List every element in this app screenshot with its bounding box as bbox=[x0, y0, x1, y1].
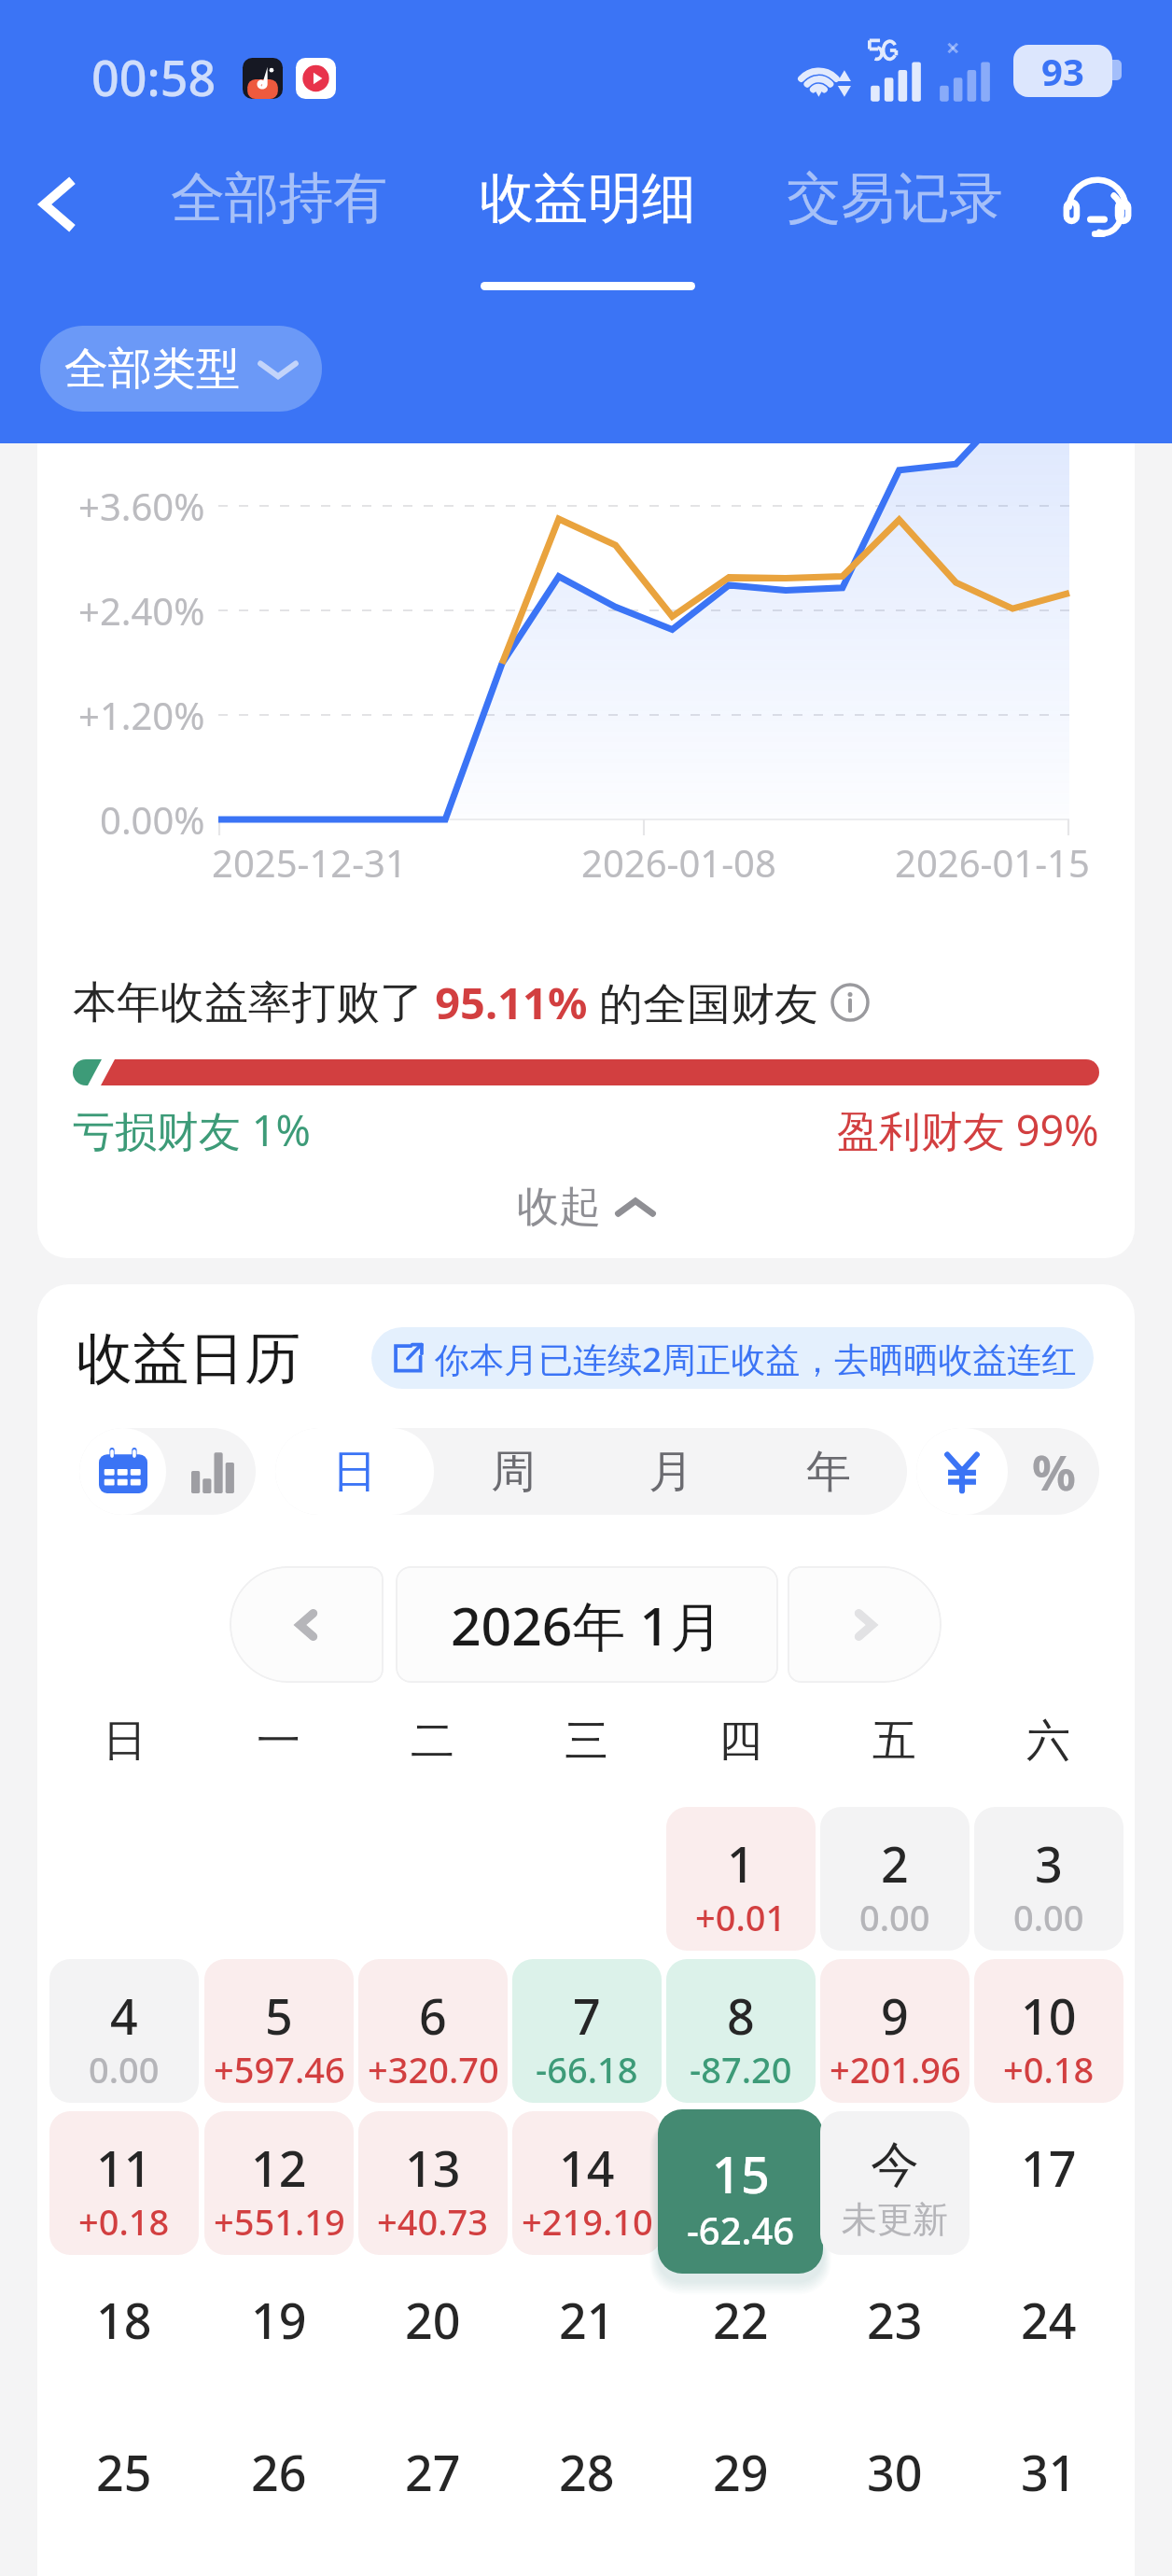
staticText: 周 bbox=[491, 1444, 536, 1500]
staticText: 全部持有 bbox=[171, 164, 387, 232]
button[interactable]: 24 bbox=[974, 2263, 1123, 2407]
staticText: 11 bbox=[96, 2135, 152, 2201]
staticText: 0.00 bbox=[89, 2045, 160, 2093]
button[interactable]: 4 bbox=[49, 1959, 199, 2103]
button[interactable]: 21 bbox=[512, 2263, 662, 2407]
staticText: +320.70 bbox=[368, 2045, 499, 2093]
button[interactable]: 6 bbox=[358, 1959, 508, 2103]
staticText: 0.00% bbox=[100, 794, 205, 845]
staticText: 25 bbox=[96, 2439, 152, 2505]
button[interactable]: 3 bbox=[974, 1807, 1123, 1951]
staticText: 93 bbox=[1041, 46, 1084, 96]
staticText: 15 bbox=[712, 2139, 770, 2208]
staticText: 二 bbox=[411, 1714, 454, 1766]
button[interactable]: Bar chart view bbox=[169, 1428, 256, 1515]
button[interactable]: Calendar view bbox=[79, 1428, 166, 1515]
staticText: 13 bbox=[405, 2135, 461, 2201]
button[interactable]: 27 bbox=[358, 2415, 508, 2559]
staticText: +40.73 bbox=[377, 2197, 489, 2246]
staticText: 23 bbox=[867, 2287, 923, 2353]
staticText: 27 bbox=[405, 2439, 461, 2505]
staticText: 2026年 1月 bbox=[451, 1589, 723, 1661]
staticText: 95.11% bbox=[424, 973, 599, 1032]
button[interactable]: 11 bbox=[49, 2111, 199, 2255]
button[interactable]: 13 bbox=[358, 2111, 508, 2255]
staticText: 8 bbox=[727, 1982, 755, 2049]
staticText: 本年收益率打败了 bbox=[73, 975, 424, 1030]
staticText: +0.18 bbox=[78, 2197, 170, 2246]
staticText: 14 bbox=[559, 2135, 615, 2201]
button[interactable]: 29 bbox=[666, 2415, 816, 2559]
button[interactable]: 收起 bbox=[37, 1179, 1135, 1235]
staticText: +0.18 bbox=[1003, 2045, 1095, 2093]
button[interactable]: 28 bbox=[512, 2415, 662, 2559]
button[interactable]: Customer service bbox=[1054, 166, 1140, 252]
staticText: 交易记录 bbox=[787, 164, 1003, 232]
staticText: 3 bbox=[1035, 1830, 1063, 1897]
staticText: 收益日历 bbox=[77, 1323, 300, 1394]
button[interactable]: 月 bbox=[592, 1428, 749, 1515]
staticText: 盈利财友 99% bbox=[837, 1101, 1099, 1158]
button[interactable]: 你本月已连续2周正收益，去晒晒收益连红 bbox=[371, 1327, 1094, 1389]
staticText: +0.01 bbox=[695, 1893, 787, 1941]
button[interactable]: 2026年 1月 bbox=[396, 1566, 778, 1683]
button[interactable]: Previous month bbox=[230, 1566, 384, 1683]
staticText: 6 bbox=[419, 1982, 447, 2049]
staticText: 28 bbox=[559, 2439, 615, 2505]
staticText: 10 bbox=[1021, 1982, 1077, 2049]
button[interactable]: 20 bbox=[358, 2263, 508, 2407]
button[interactable]: 19 bbox=[204, 2263, 354, 2407]
button[interactable]: 日 bbox=[275, 1428, 434, 1515]
button[interactable]: 10 bbox=[974, 1959, 1123, 2103]
staticText: 18 bbox=[96, 2287, 152, 2353]
button[interactable]: 9 bbox=[820, 1959, 970, 2103]
staticText: 五 bbox=[872, 1714, 916, 1766]
button[interactable]: 全部持有 bbox=[158, 164, 400, 291]
staticText: 收益明细 bbox=[480, 164, 696, 232]
staticText: 19 bbox=[251, 2287, 307, 2353]
button[interactable]: 1 bbox=[666, 1807, 816, 1951]
button[interactable]: 15 bbox=[658, 2109, 823, 2274]
button[interactable]: Back bbox=[16, 162, 100, 246]
button[interactable]: 12 bbox=[204, 2111, 354, 2255]
button[interactable]: 8 bbox=[666, 1959, 816, 2103]
staticText: 日 bbox=[332, 1444, 377, 1500]
button[interactable]: 17 bbox=[974, 2111, 1123, 2255]
button[interactable]: 23 bbox=[820, 2263, 970, 2407]
button[interactable]: 周 bbox=[434, 1428, 592, 1515]
staticText: -87.20 bbox=[690, 2045, 792, 2093]
staticText: -66.18 bbox=[536, 2045, 638, 2093]
staticText: 20 bbox=[405, 2287, 461, 2353]
staticText: 0.00 bbox=[1013, 1893, 1084, 1941]
staticText: 你本月已连续2周正收益，去晒晒收益连红 bbox=[435, 1335, 1077, 1382]
button[interactable]: 18 bbox=[49, 2263, 199, 2407]
staticText: +551.19 bbox=[214, 2197, 345, 2246]
staticText: 2026-01-08 bbox=[581, 837, 776, 888]
staticText: +201.96 bbox=[830, 2045, 961, 2093]
button[interactable]: 5 bbox=[204, 1959, 354, 2103]
staticText: 全部类型 bbox=[64, 342, 240, 397]
button[interactable]: Show percent bbox=[1008, 1428, 1099, 1515]
staticText: 亏损财友 1% bbox=[73, 1101, 311, 1158]
staticText: 12 bbox=[251, 2135, 307, 2201]
staticText: +597.46 bbox=[214, 2045, 345, 2093]
button[interactable]: 25 bbox=[49, 2415, 199, 2559]
button[interactable]: 7 bbox=[512, 1959, 662, 2103]
button[interactable]: 年 bbox=[749, 1428, 907, 1515]
button[interactable]: Show amount bbox=[916, 1428, 1008, 1515]
button[interactable]: 今 bbox=[820, 2111, 970, 2255]
button[interactable]: Next month bbox=[788, 1566, 942, 1683]
staticText: 22 bbox=[713, 2287, 769, 2353]
button[interactable]: 31 bbox=[974, 2415, 1123, 2559]
button[interactable]: 全部类型 bbox=[40, 326, 322, 412]
button[interactable]: 14 bbox=[512, 2111, 662, 2255]
button[interactable]: 30 bbox=[820, 2415, 970, 2559]
staticText: % bbox=[1032, 1438, 1076, 1505]
button[interactable]: 26 bbox=[204, 2415, 354, 2559]
button[interactable]: 收益明细 bbox=[467, 164, 709, 291]
button[interactable]: 交易记录 bbox=[774, 164, 1016, 291]
button[interactable]: 22 bbox=[666, 2263, 816, 2407]
button[interactable]: 2 bbox=[820, 1807, 970, 1951]
staticText: -62.46 bbox=[687, 2205, 795, 2255]
staticText: 今 bbox=[871, 2135, 919, 2196]
